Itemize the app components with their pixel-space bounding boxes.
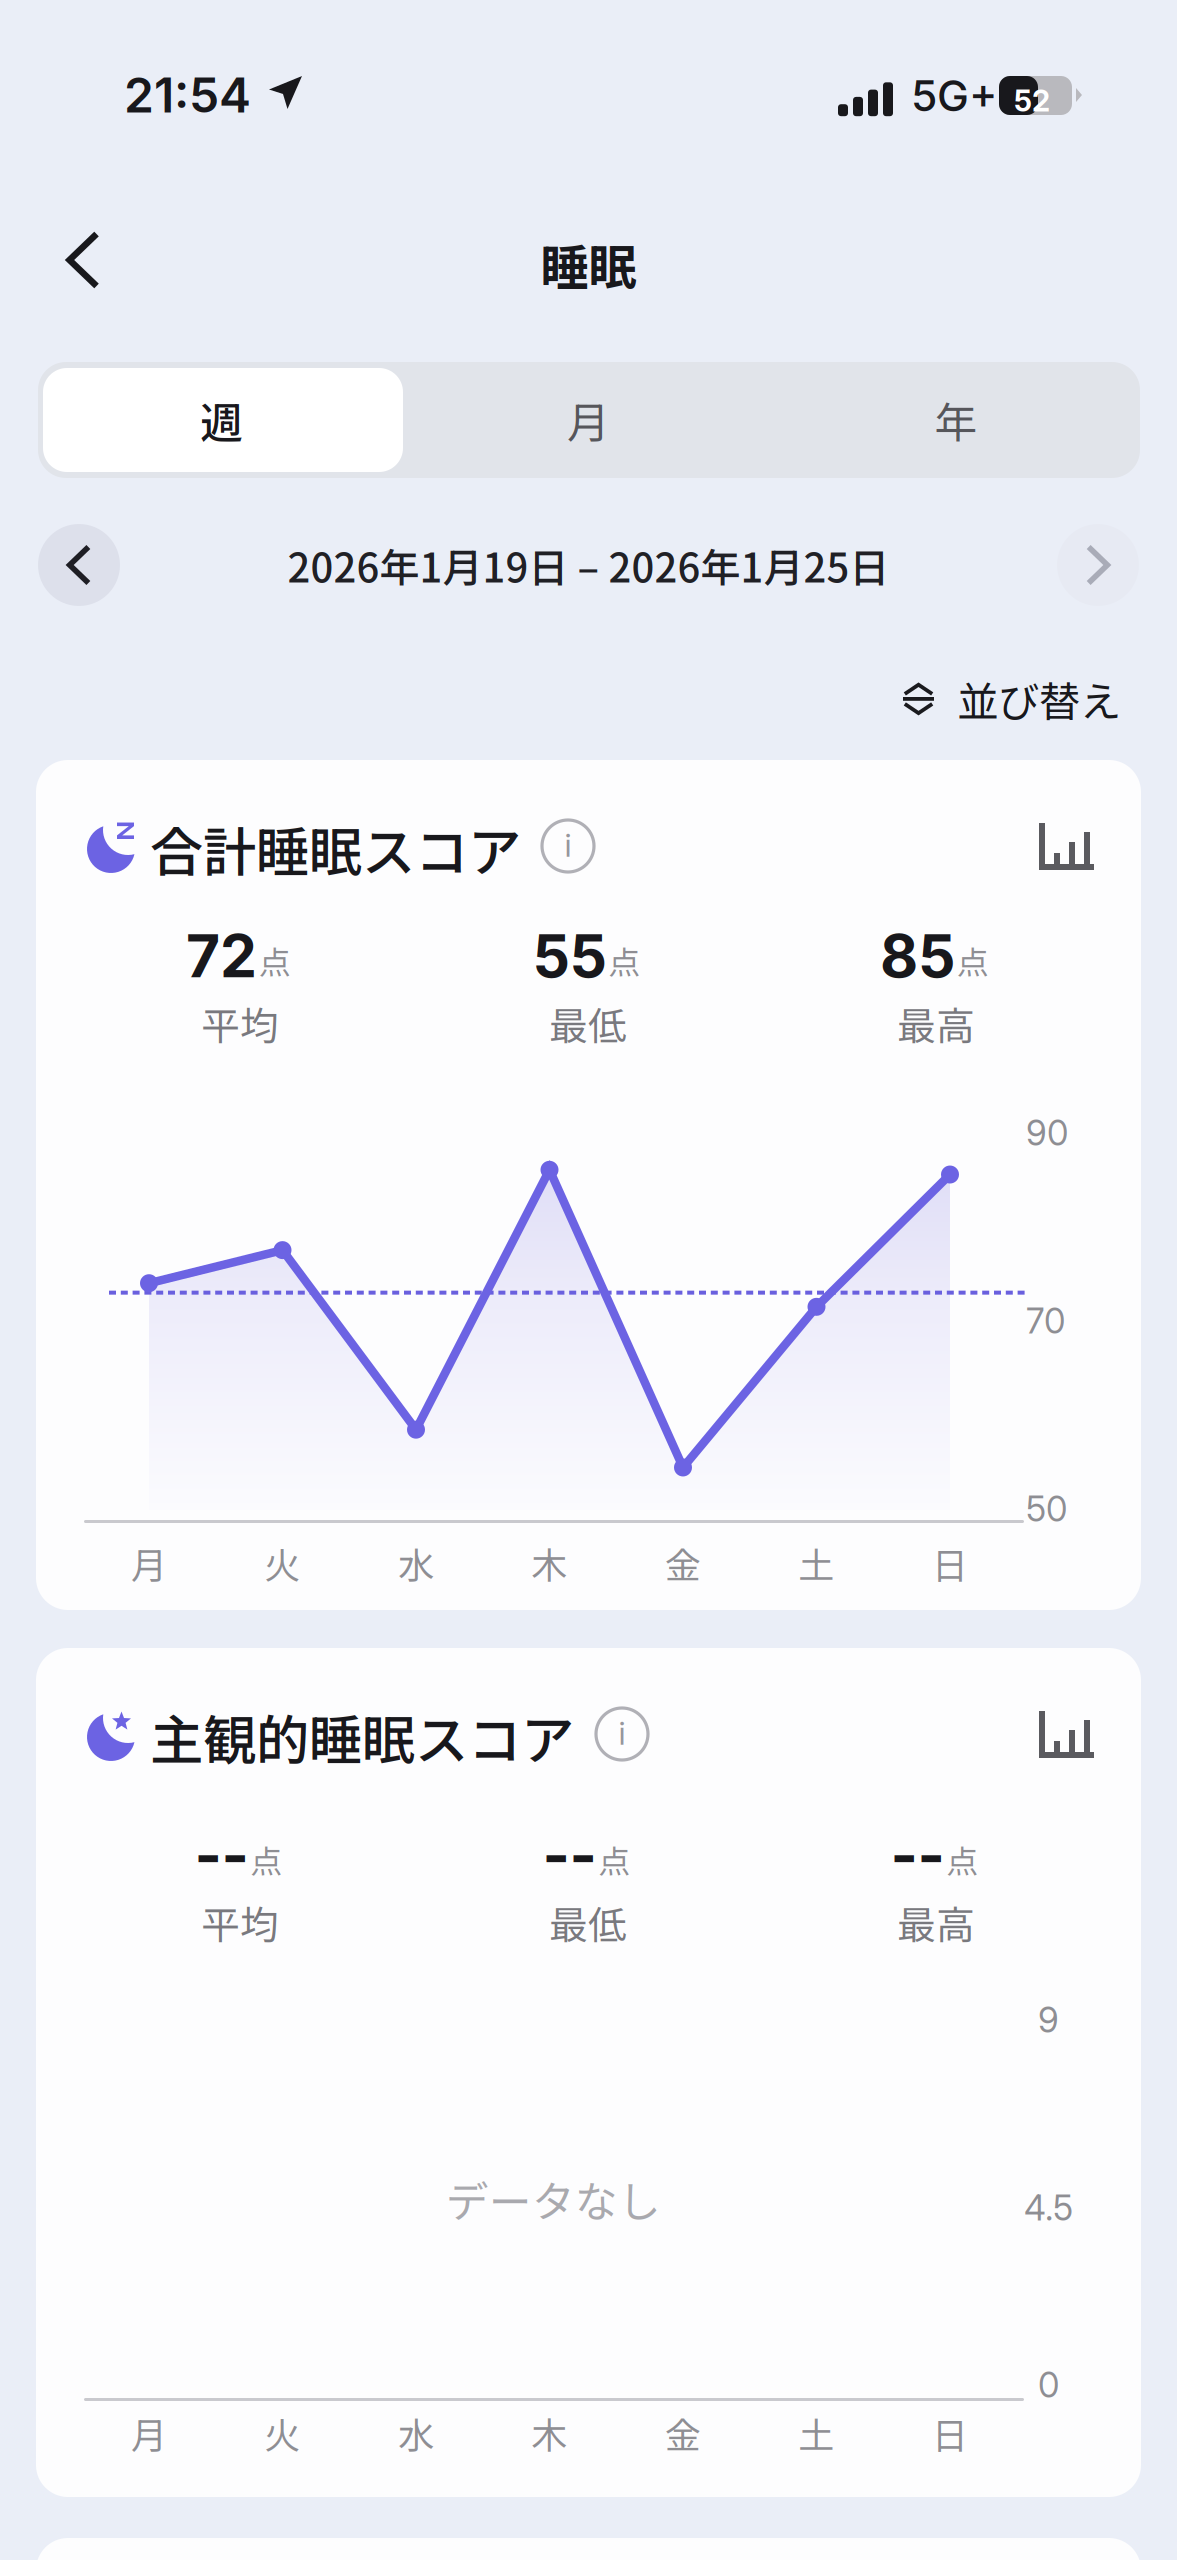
staticText: 年	[934, 389, 977, 451]
staticText: 睡眠	[540, 229, 636, 299]
staticText: 金	[665, 2407, 701, 2459]
staticText: データなし	[446, 2168, 661, 2230]
staticText: 点	[957, 937, 989, 983]
staticText: 金	[665, 1537, 701, 1589]
staticText: 50	[1026, 1488, 1067, 1530]
button[interactable]: 次の週	[1057, 524, 1139, 606]
button[interactable]: 詳細情報	[592, 1704, 652, 1764]
button[interactable]: 月	[405, 362, 772, 478]
staticText: 木	[531, 1537, 567, 1589]
button[interactable]: 前の週	[38, 524, 120, 606]
staticText: 週	[200, 389, 243, 451]
staticText: 月	[567, 389, 610, 451]
staticText: 70	[1026, 1300, 1065, 1342]
staticText: 木	[531, 2407, 567, 2459]
staticText: 水	[398, 2407, 434, 2459]
staticText: 72	[186, 920, 257, 991]
staticText: 最低	[549, 1894, 627, 1950]
staticText: 土	[798, 2407, 834, 2459]
staticText: i	[618, 1714, 625, 1752]
staticText: 並び替え	[957, 669, 1121, 729]
staticText: 最低	[549, 995, 627, 1051]
staticText: 21:54	[124, 66, 251, 124]
staticText: 合計睡眠スコア	[150, 810, 521, 887]
staticText: 90	[1026, 1112, 1068, 1154]
staticText: 土	[798, 1537, 834, 1589]
staticText: 火	[264, 1537, 300, 1589]
staticText: 水	[398, 1537, 434, 1589]
staticText: i	[564, 826, 571, 864]
staticText: 最高	[897, 1894, 975, 1950]
staticText: 0	[1038, 2364, 1059, 2406]
button[interactable]: グラフ表示	[1036, 816, 1100, 874]
staticText: 5G+	[911, 70, 997, 122]
staticText: 点	[946, 1836, 978, 1882]
staticText: 日	[932, 1537, 968, 1589]
staticText: 9	[1038, 1999, 1059, 2041]
staticText: 平均	[201, 995, 279, 1051]
staticText: 点	[250, 1836, 282, 1882]
button[interactable]: グラフ表示	[1036, 1704, 1100, 1762]
staticText: 85	[880, 920, 955, 991]
button[interactable]: 年	[772, 362, 1140, 478]
staticText: 52	[1014, 83, 1050, 118]
staticText: 点	[608, 937, 640, 983]
button[interactable]: 週	[38, 362, 405, 478]
staticText: 火	[264, 2407, 300, 2459]
staticText: 月	[131, 1537, 167, 1589]
staticText: 点	[598, 1836, 630, 1882]
staticText: --	[194, 1819, 248, 1890]
staticText: 2026年1月19日 – 2026年1月25日	[287, 536, 889, 594]
staticText: --	[890, 1819, 944, 1890]
staticText: 日	[932, 2407, 968, 2459]
staticText: 点	[259, 937, 291, 983]
staticText: 4.5	[1024, 2187, 1073, 2229]
button[interactable]: 戻る	[31, 210, 135, 310]
staticText: 月	[131, 2407, 167, 2459]
button[interactable]: 詳細情報	[538, 816, 598, 876]
staticText: 55	[532, 920, 606, 991]
staticText: 最高	[897, 995, 975, 1051]
button[interactable]: 並び替え	[895, 661, 1129, 737]
staticText: 平均	[201, 1894, 279, 1950]
staticText: --	[542, 1819, 596, 1890]
staticText: 主観的睡眠スコア	[150, 1698, 574, 1775]
